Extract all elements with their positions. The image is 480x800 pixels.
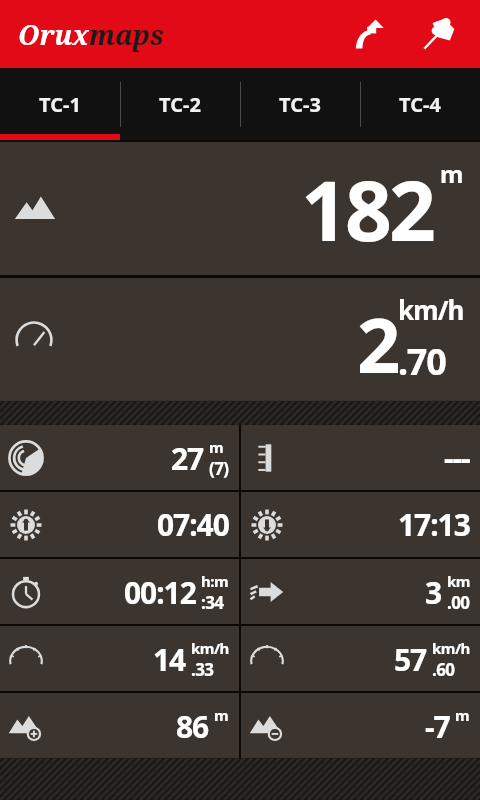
staticText: TC-2 — [159, 91, 201, 118]
button[interactable]: Max speed — [241, 626, 480, 691]
staticText: 14 — [153, 639, 186, 680]
button[interactable]: Sunrise — [0, 492, 239, 557]
staticText: (7) — [209, 457, 229, 479]
button[interactable]: GPS accuracy — [0, 425, 239, 490]
staticText: m — [214, 705, 229, 725]
staticText: 86 — [176, 706, 209, 747]
staticText: Orux — [18, 16, 89, 53]
staticText: km — [447, 571, 470, 591]
staticText: h:m — [201, 571, 229, 591]
button[interactable]: TC-2 — [120, 68, 240, 140]
staticText: 2 — [357, 292, 398, 388]
button[interactable]: TC-3 — [240, 68, 360, 140]
button[interactable]: Average speed — [0, 626, 239, 691]
staticText: 57 — [394, 639, 427, 680]
staticText: TC-3 — [279, 91, 321, 118]
button[interactable]: Pin waypoint — [412, 7, 466, 61]
staticText: TC-1 — [39, 91, 81, 118]
staticText: m — [455, 705, 470, 725]
staticText: .33 — [191, 658, 214, 680]
staticText: 3 — [425, 572, 442, 613]
staticText: 17:13 — [398, 504, 470, 545]
staticText: 07:40 — [157, 504, 229, 545]
staticText: m — [209, 437, 224, 457]
staticText: maps — [89, 16, 164, 53]
staticText: 182 — [301, 153, 434, 265]
button[interactable]: Distance to point — [241, 425, 480, 490]
staticText: km/h — [398, 292, 464, 327]
button[interactable]: 182 — [0, 142, 480, 275]
button[interactable]: Go to route — [342, 7, 396, 61]
staticText: km/h — [432, 638, 470, 658]
staticText: --- — [444, 437, 470, 478]
button[interactable]: TC-4 — [360, 68, 480, 140]
staticText: TC-4 — [399, 91, 441, 118]
button[interactable]: Ascent — [0, 693, 239, 758]
button[interactable]: Elapsed time — [0, 559, 239, 624]
button[interactable]: Sunset — [241, 492, 480, 557]
staticText: m — [440, 157, 464, 190]
staticText: .60 — [432, 658, 455, 680]
button[interactable]: TC-1 — [0, 68, 120, 140]
button[interactable]: 2 — [0, 278, 480, 401]
staticText: km/h — [191, 638, 229, 658]
staticText: .00 — [447, 591, 470, 613]
staticText: 00:12 — [124, 572, 196, 613]
button[interactable]: Descent — [241, 693, 480, 758]
button[interactable]: Distance — [241, 559, 480, 624]
staticText: 27 — [171, 438, 204, 479]
staticText: -7 — [425, 706, 450, 747]
staticText: .70 — [398, 337, 446, 386]
staticText: :34 — [201, 591, 224, 613]
